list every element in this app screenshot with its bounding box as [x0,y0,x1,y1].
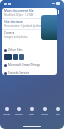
button[interactable]: Microsoft SmartThings [2,63,57,67]
staticText: Me [56,112,60,115]
button[interactable]: Home [0,102,12,129]
staticText: Files [29,112,34,115]
button[interactable]: Files [25,102,38,129]
staticText: Home [3,112,10,115]
staticText: Presentation · Updated by Ana [4,24,42,28]
staticText: Notes [41,112,48,115]
button[interactable]: Me [51,102,64,129]
button[interactable]: Covers [2,30,57,40]
staticText: Covers [4,31,15,35]
staticText: Microsoft SmartThings [8,63,40,67]
button[interactable]: Site decision [2,19,57,29]
button[interactable]: Sounds Service [2,71,57,75]
staticText: Modified 20 Jan · 1.2 MB [4,13,34,17]
staticText: Site decision [4,20,24,24]
button[interactable]: Other files [2,48,57,52]
staticText: Search [15,112,23,115]
staticText: Images and photos [4,35,28,39]
button[interactable]: Search [12,102,25,129]
staticText: Sounds Service [8,71,30,75]
staticText: Main document file [4,9,34,13]
button[interactable]: More options [55,9,61,15]
staticText: Other files [8,48,23,52]
button[interactable]: Notes [38,102,51,129]
button[interactable]: Main document file [2,8,57,18]
